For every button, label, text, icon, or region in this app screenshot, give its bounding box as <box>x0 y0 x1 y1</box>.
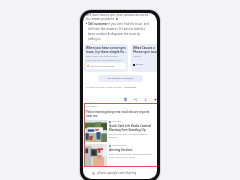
staticText: Cleveland.com <box>112 144 127 147</box>
staticText: Sign in, then - make sure the Phone numb… <box>86 55 122 61</box>
staticText: and learn how to sync your contacts acro… <box>86 13 149 17</box>
button[interactable]: Like <box>152 96 157 102</box>
staticText: What Causes a Phone sync issue <box>133 46 157 54</box>
staticText: AI responses may include mistakes. <box>86 86 124 89</box>
staticText: Fox News <box>112 120 122 123</box>
button[interactable]: Share <box>132 96 138 102</box>
staticText: Call customer if you can't find the issu… <box>88 22 149 41</box>
staticText: Take Traveler Tips, Including A Means & … <box>109 133 153 139</box>
button[interactable]: What Causes a Phone sync issue <box>131 44 157 72</box>
button[interactable]: Cleveland.com <box>85 144 157 166</box>
staticText: Fix contact problems <box>86 17 115 21</box>
button[interactable]: Save <box>142 96 148 102</box>
staticText: Quick Carb Life Hacks Comical Morning Fr… <box>109 124 153 132</box>
staticText: Ask a follow-up question <box>107 77 134 80</box>
staticText: Get the latest Android help <box>90 65 124 68</box>
staticText: photos.google.com/sharing <box>97 171 137 175</box>
staticText: Top stories <box>86 105 98 108</box>
staticText: When you have a new sync issue, try thes… <box>86 46 127 54</box>
staticText: Police investigating new road closure re… <box>86 110 152 118</box>
button[interactable]: Ask a follow-up question <box>98 75 143 82</box>
staticText: Updated <box>133 55 141 58</box>
staticText: Fresh Standing Experience Free Journey w… <box>109 153 153 159</box>
button[interactable]: Get the latest Android help <box>87 63 125 69</box>
button[interactable]: Copy <box>122 96 128 102</box>
staticText: Arriving Services <box>109 148 133 152</box>
staticText: android <box>136 63 143 66</box>
button[interactable]: Fox News <box>85 120 157 142</box>
staticText: › <box>124 65 125 68</box>
staticText: ⋮ <box>154 144 157 147</box>
staticText: Learn more <box>124 86 137 89</box>
button[interactable]: When you have a new sync issue, try thes… <box>84 44 128 72</box>
staticText: ⋮ <box>154 120 157 123</box>
